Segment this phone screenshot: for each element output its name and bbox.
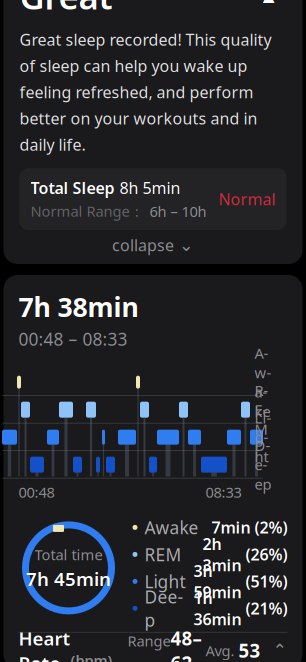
staticText: 6h – 10h (149, 201, 206, 221)
staticText: REM (144, 543, 181, 566)
staticText: ⌃ (260, 641, 287, 660)
staticText: 2h 3min (202, 533, 241, 576)
staticText: Deep (254, 435, 271, 494)
staticText: ▲ (262, 0, 274, 5)
staticText: 7min (211, 517, 250, 538)
staticText: Deep (144, 585, 183, 631)
staticText: Awake (254, 343, 271, 421)
staticText: collapse (112, 234, 174, 256)
staticText: Great (19, 0, 112, 19)
staticText: (2%) (250, 517, 287, 538)
staticText: 08:33 (205, 482, 241, 502)
staticText: 7h 45min (26, 566, 111, 591)
staticText: Light (144, 570, 185, 593)
staticText: (51%) (241, 571, 287, 592)
staticText: 3h 59min (193, 560, 241, 603)
staticText: 00:48 (18, 482, 54, 502)
staticText: 00:48 – 08:33 (18, 327, 127, 350)
staticText: 7h 38min (18, 289, 138, 324)
staticText: Avg. (201, 641, 238, 660)
staticText: 48–62 (170, 626, 201, 662)
staticText: REM (254, 380, 268, 439)
staticText: Range (127, 631, 170, 662)
button[interactable]: collapse (19, 232, 286, 258)
staticText: 53 (238, 638, 260, 662)
staticText: ⌄ (179, 235, 194, 255)
staticText: Normal (218, 188, 275, 210)
staticText: (26%) (241, 544, 287, 565)
staticText: 8h 5min (119, 177, 180, 198)
staticText: Total Sleep (30, 177, 114, 198)
staticText: (bpm) (70, 631, 112, 662)
staticText: Heart Rate (18, 626, 70, 662)
staticText: (21%) (241, 598, 287, 619)
staticText: Awake (144, 516, 198, 539)
staticText: Great sleep recorded! This quality of sl… (19, 29, 271, 155)
staticText: Total time (34, 545, 102, 564)
staticText: Light (254, 408, 271, 466)
staticText: 1h 36min (193, 587, 241, 630)
staticText: Normal Range： (30, 201, 144, 221)
button[interactable]: Heart Rate (18, 633, 287, 662)
